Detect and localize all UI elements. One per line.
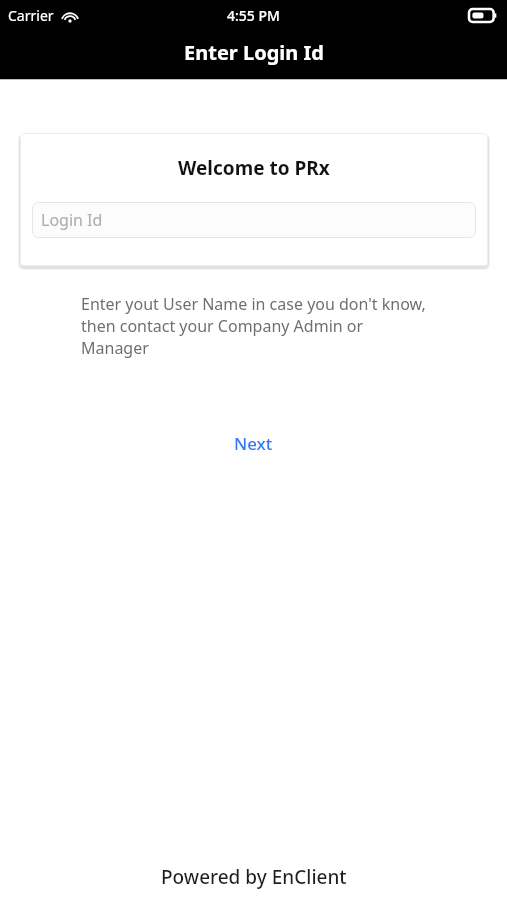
staticText: Enter yout User Name in case you don't k…	[81, 293, 429, 359]
button[interactable]: Next	[0, 430, 507, 456]
staticText: Powered by EnClient	[161, 864, 347, 890]
other: Wi-Fi signal	[61, 9, 79, 23]
staticText: Login Id	[41, 209, 103, 231]
staticText: Enter Login Id	[184, 39, 324, 66]
staticText: Welcome to PRx	[178, 155, 330, 181]
staticText: Next	[234, 432, 273, 455]
other: Battery	[469, 9, 497, 22]
button[interactable]: Login Id	[32, 202, 476, 238]
staticText: 4:55 PM	[227, 6, 280, 25]
staticText: Carrier	[8, 6, 54, 25]
